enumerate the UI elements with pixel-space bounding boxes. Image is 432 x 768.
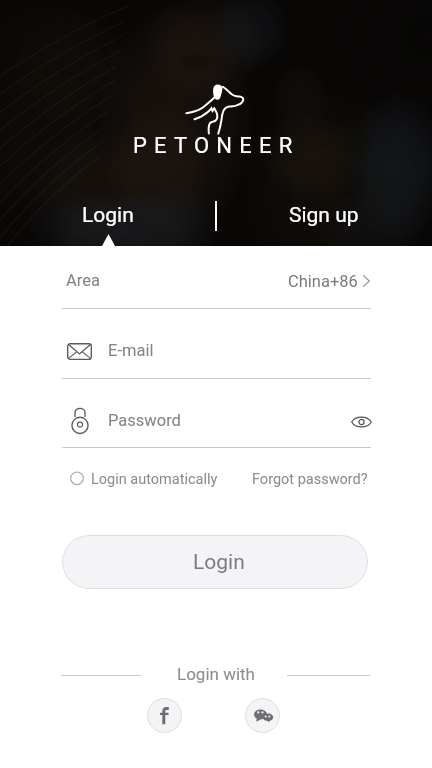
staticText: Login — [82, 203, 134, 228]
button[interactable]: Log in with WeChat — [245, 698, 280, 733]
button[interactable]: Sign up — [216, 203, 432, 246]
staticText: Password — [108, 411, 181, 430]
button[interactable]: Log in with Facebook — [147, 698, 182, 733]
staticText: E-mail — [108, 341, 154, 360]
button[interactable]: Password — [62, 406, 371, 448]
button[interactable]: E-mail — [62, 336, 371, 378]
other: Petoneer — [183, 78, 247, 136]
button[interactable]: Show password — [343, 403, 379, 441]
button[interactable]: Forgot password? — [252, 464, 368, 494]
staticText: Sign up — [289, 203, 359, 228]
staticText: Login with — [177, 664, 255, 684]
staticText: Forgot password? — [252, 471, 368, 488]
button[interactable]: Login — [62, 535, 368, 589]
staticText: China+86 — [288, 272, 358, 291]
button[interactable]: Login automatically — [69, 464, 212, 494]
staticText: Login — [193, 550, 245, 575]
staticText: PETONEER — [133, 133, 300, 159]
staticText: Area — [66, 271, 100, 290]
button[interactable]: Area — [62, 266, 371, 308]
staticText: Login automatically — [91, 471, 218, 488]
button[interactable]: Login — [0, 203, 216, 246]
